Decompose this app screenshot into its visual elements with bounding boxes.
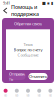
button[interactable]: Tab 1 (11, 89, 22, 97)
staticText: Помощь и поддержка (11, 3, 39, 18)
staticText: Тема (23, 42, 32, 47)
button[interactable]: Tab 4 (45, 89, 56, 97)
staticText: ■ ▪ ▮ (42, 1, 53, 5)
staticText: Вопрос по счету (13, 47, 42, 52)
button[interactable]: Back (2, 6, 9, 14)
staticText: Сообщение (17, 52, 38, 58)
staticText: Tab (26, 94, 30, 97)
button[interactable]: Tab 0 (0, 89, 11, 97)
staticText: 9:41 (3, 0, 10, 6)
staticText: Отправить (9, 71, 25, 82)
button[interactable]: Отправить (8, 73, 25, 80)
staticText: Tab (37, 94, 41, 97)
button[interactable]: Отменить (28, 73, 47, 80)
staticText: Tab (4, 94, 8, 97)
staticText: Tab (15, 94, 19, 97)
button[interactable]: Tab 3 (34, 89, 45, 97)
button[interactable]: Tab 2 (22, 89, 34, 97)
staticText: Обратная связь (14, 21, 42, 26)
staticText: Отменить (29, 74, 47, 79)
staticText: Tab (48, 94, 52, 97)
